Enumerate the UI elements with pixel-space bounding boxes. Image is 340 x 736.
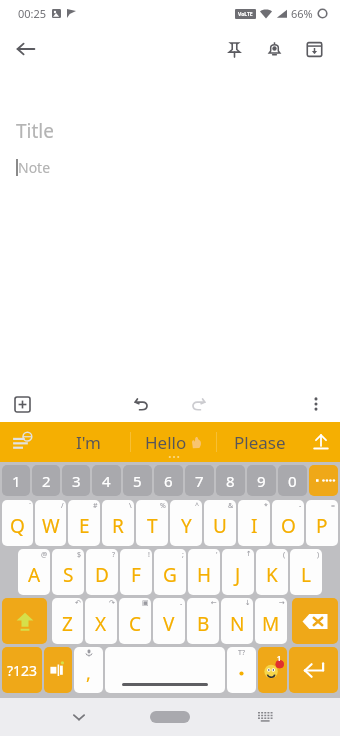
button[interactable]: #	[68, 500, 100, 546]
staticText: X	[95, 611, 107, 637]
button[interactable]: ↑	[222, 549, 254, 595]
button[interactable]: →	[255, 598, 287, 644]
button[interactable]: Language settings	[0, 422, 46, 462]
staticText: 0	[288, 471, 297, 491]
button[interactable]: Enter	[289, 647, 338, 693]
button[interactable]: Add	[6, 388, 38, 420]
button[interactable]: /	[35, 500, 66, 546]
button[interactable]: )	[290, 549, 322, 595]
staticText: @	[41, 550, 48, 560]
button[interactable]: Reminder	[254, 29, 294, 69]
button[interactable]: 7	[185, 465, 214, 496]
staticText: 7	[195, 471, 204, 491]
button[interactable]: ↷	[85, 598, 117, 644]
button[interactable]: \	[102, 500, 134, 546]
button[interactable]: `	[2, 500, 33, 546]
staticText: ↷	[109, 599, 115, 607]
button[interactable]: @	[18, 549, 50, 595]
button[interactable]: More options	[300, 388, 332, 420]
staticText: ^	[195, 501, 200, 511]
staticText: -	[299, 501, 302, 511]
button[interactable]: Clipboard	[44, 647, 72, 693]
button[interactable]: ,	[74, 647, 103, 693]
staticText: *	[264, 501, 268, 511]
button[interactable]: &	[204, 500, 236, 546]
staticText: 1	[12, 471, 21, 491]
button[interactable]: Back	[8, 31, 44, 67]
staticText: 1	[277, 654, 282, 664]
staticText: R	[112, 513, 124, 539]
button[interactable]: ↓	[221, 598, 253, 644]
button[interactable]: Switch keyboard	[248, 700, 282, 734]
button[interactable]: ?123	[2, 647, 42, 693]
button[interactable]: Redo	[183, 388, 215, 420]
button[interactable]: -	[272, 500, 304, 546]
staticText: →	[279, 599, 285, 607]
staticText: G	[163, 562, 177, 588]
button[interactable]: Hide keyboard	[62, 700, 96, 734]
button[interactable]: ←	[187, 598, 219, 644]
staticText: Note	[18, 158, 51, 177]
staticText: !	[148, 550, 150, 560]
button[interactable]: 1	[2, 465, 30, 496]
button[interactable]: Expand	[302, 422, 340, 462]
staticText: F	[131, 562, 141, 588]
button[interactable]: ▣	[119, 598, 151, 644]
button[interactable]: 2	[32, 465, 60, 496]
button[interactable]: 0	[278, 465, 307, 496]
staticText: H	[197, 562, 212, 588]
staticText: 6	[164, 471, 173, 491]
button[interactable]: ?	[86, 549, 118, 595]
button[interactable]: !	[120, 549, 152, 595]
staticText: )	[317, 550, 320, 560]
button[interactable]: Pin	[214, 29, 254, 69]
button[interactable]: 6	[154, 465, 183, 496]
staticText: &	[228, 501, 234, 511]
button[interactable]: Hello	[131, 422, 216, 462]
button[interactable]: 9	[247, 465, 276, 496]
button[interactable]: $	[52, 549, 84, 595]
button[interactable]: Home	[150, 711, 190, 723]
button[interactable]: Please	[217, 422, 302, 462]
button[interactable]: 8	[216, 465, 245, 496]
button[interactable]: Archive	[294, 29, 334, 69]
staticText: N	[230, 611, 245, 637]
button[interactable]: I'm	[46, 422, 130, 462]
staticText: 66%	[291, 6, 313, 21]
staticText: ?	[112, 550, 116, 560]
staticText: 4	[102, 471, 111, 491]
button[interactable]: 3	[62, 465, 90, 496]
staticText: #	[93, 501, 98, 511]
staticText: K	[266, 562, 278, 588]
button[interactable]: Emoji	[258, 647, 287, 693]
staticText: J	[235, 562, 241, 588]
button[interactable]: ;	[154, 549, 186, 595]
button[interactable]: (	[256, 549, 288, 595]
staticText: $	[77, 550, 82, 560]
staticText: A	[28, 562, 41, 588]
button[interactable]: Space	[105, 647, 225, 693]
button[interactable]: =	[306, 500, 338, 546]
staticText: `	[29, 501, 31, 511]
staticText: B	[197, 611, 210, 637]
staticText: 2	[42, 471, 51, 491]
button[interactable]: -	[153, 598, 185, 644]
button[interactable]: *	[238, 500, 270, 546]
button[interactable]: More	[309, 465, 338, 496]
button[interactable]: Shift	[2, 598, 47, 644]
button[interactable]: Backspace	[292, 598, 338, 644]
button[interactable]: %	[136, 500, 168, 546]
button[interactable]: T?	[227, 647, 256, 693]
staticText: I	[251, 513, 258, 539]
staticText: \	[129, 501, 132, 511]
button[interactable]: Undo	[125, 388, 157, 420]
button[interactable]: '	[188, 549, 220, 595]
button[interactable]: ^	[170, 500, 202, 546]
staticText: Title	[16, 118, 54, 144]
staticText: ↑	[246, 550, 252, 558]
staticText: %	[160, 501, 166, 511]
button[interactable]: 4	[92, 465, 121, 496]
button[interactable]: 5	[123, 465, 152, 496]
button[interactable]: ↶	[52, 598, 83, 644]
staticText: D	[95, 562, 109, 588]
